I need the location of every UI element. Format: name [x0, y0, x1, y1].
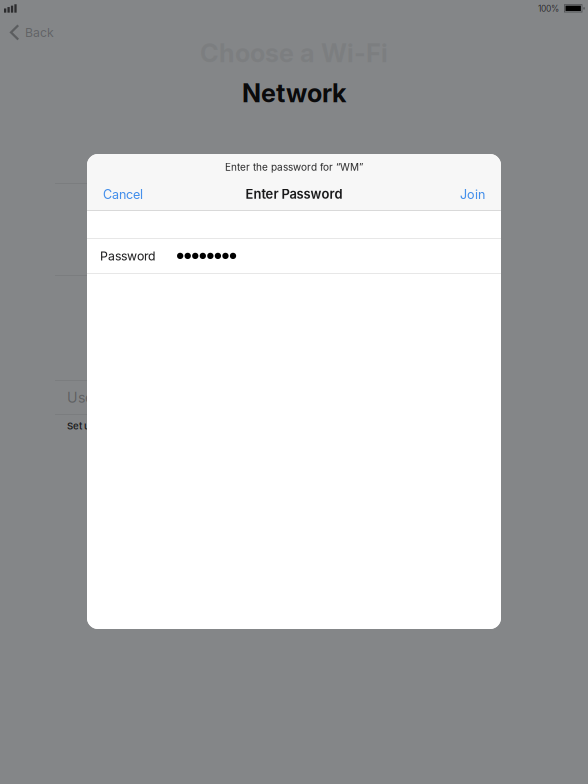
- staticText: Join: [460, 187, 485, 202]
- staticText: Cancel: [103, 187, 143, 202]
- staticText: 100%: [538, 4, 559, 14]
- button[interactable]: Join: [446, 186, 501, 202]
- button[interactable]: Use 2.4GHz Band: [55, 381, 500, 414]
- button[interactable]: Set up an AirPort base station…: [55, 415, 500, 437]
- button[interactable]: Back: [0, 17, 64, 43]
- staticText: Use 2.4GHz Band: [67, 389, 187, 406]
- button[interactable]: Cancel: [87, 186, 157, 202]
- staticText: Back: [25, 25, 54, 40]
- staticText: Enter Password: [245, 186, 342, 202]
- staticText: Set up an AirPort base station…: [67, 420, 213, 432]
- staticText: Network: [242, 78, 346, 108]
- staticText: Password: [100, 249, 156, 263]
- staticText: Enter the password for “WM”: [225, 161, 363, 173]
- staticText: Choose a Wi-Fi: [200, 38, 388, 68]
